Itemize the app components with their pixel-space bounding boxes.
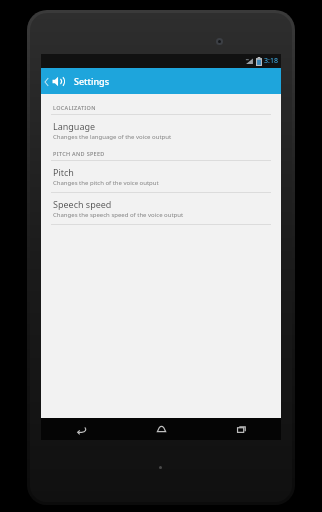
button[interactable]: Back — [41, 418, 121, 440]
button[interactable]: Home — [121, 418, 201, 440]
staticText: LOCALIZATION — [53, 104, 96, 111]
staticText: PITCH AND SPEED — [53, 150, 105, 157]
button[interactable]: Pitch — [41, 161, 281, 192]
staticText: Language — [53, 120, 96, 132]
staticText: Speech speed — [53, 198, 112, 210]
button[interactable]: Speech speed — [41, 193, 281, 224]
button[interactable]: Navigate up — [41, 74, 70, 89]
staticText: Settings — [74, 75, 110, 87]
button[interactable]: Recent apps — [201, 418, 281, 440]
staticText: Changes the speech speed of the voice ou… — [53, 211, 184, 219]
staticText: 3:18 — [264, 56, 278, 66]
staticText: Changes the language of the voice output — [53, 133, 172, 141]
button[interactable]: Language — [41, 115, 281, 146]
staticText: Pitch — [53, 166, 74, 178]
staticText: Changes the pitch of the voice output — [53, 179, 159, 187]
